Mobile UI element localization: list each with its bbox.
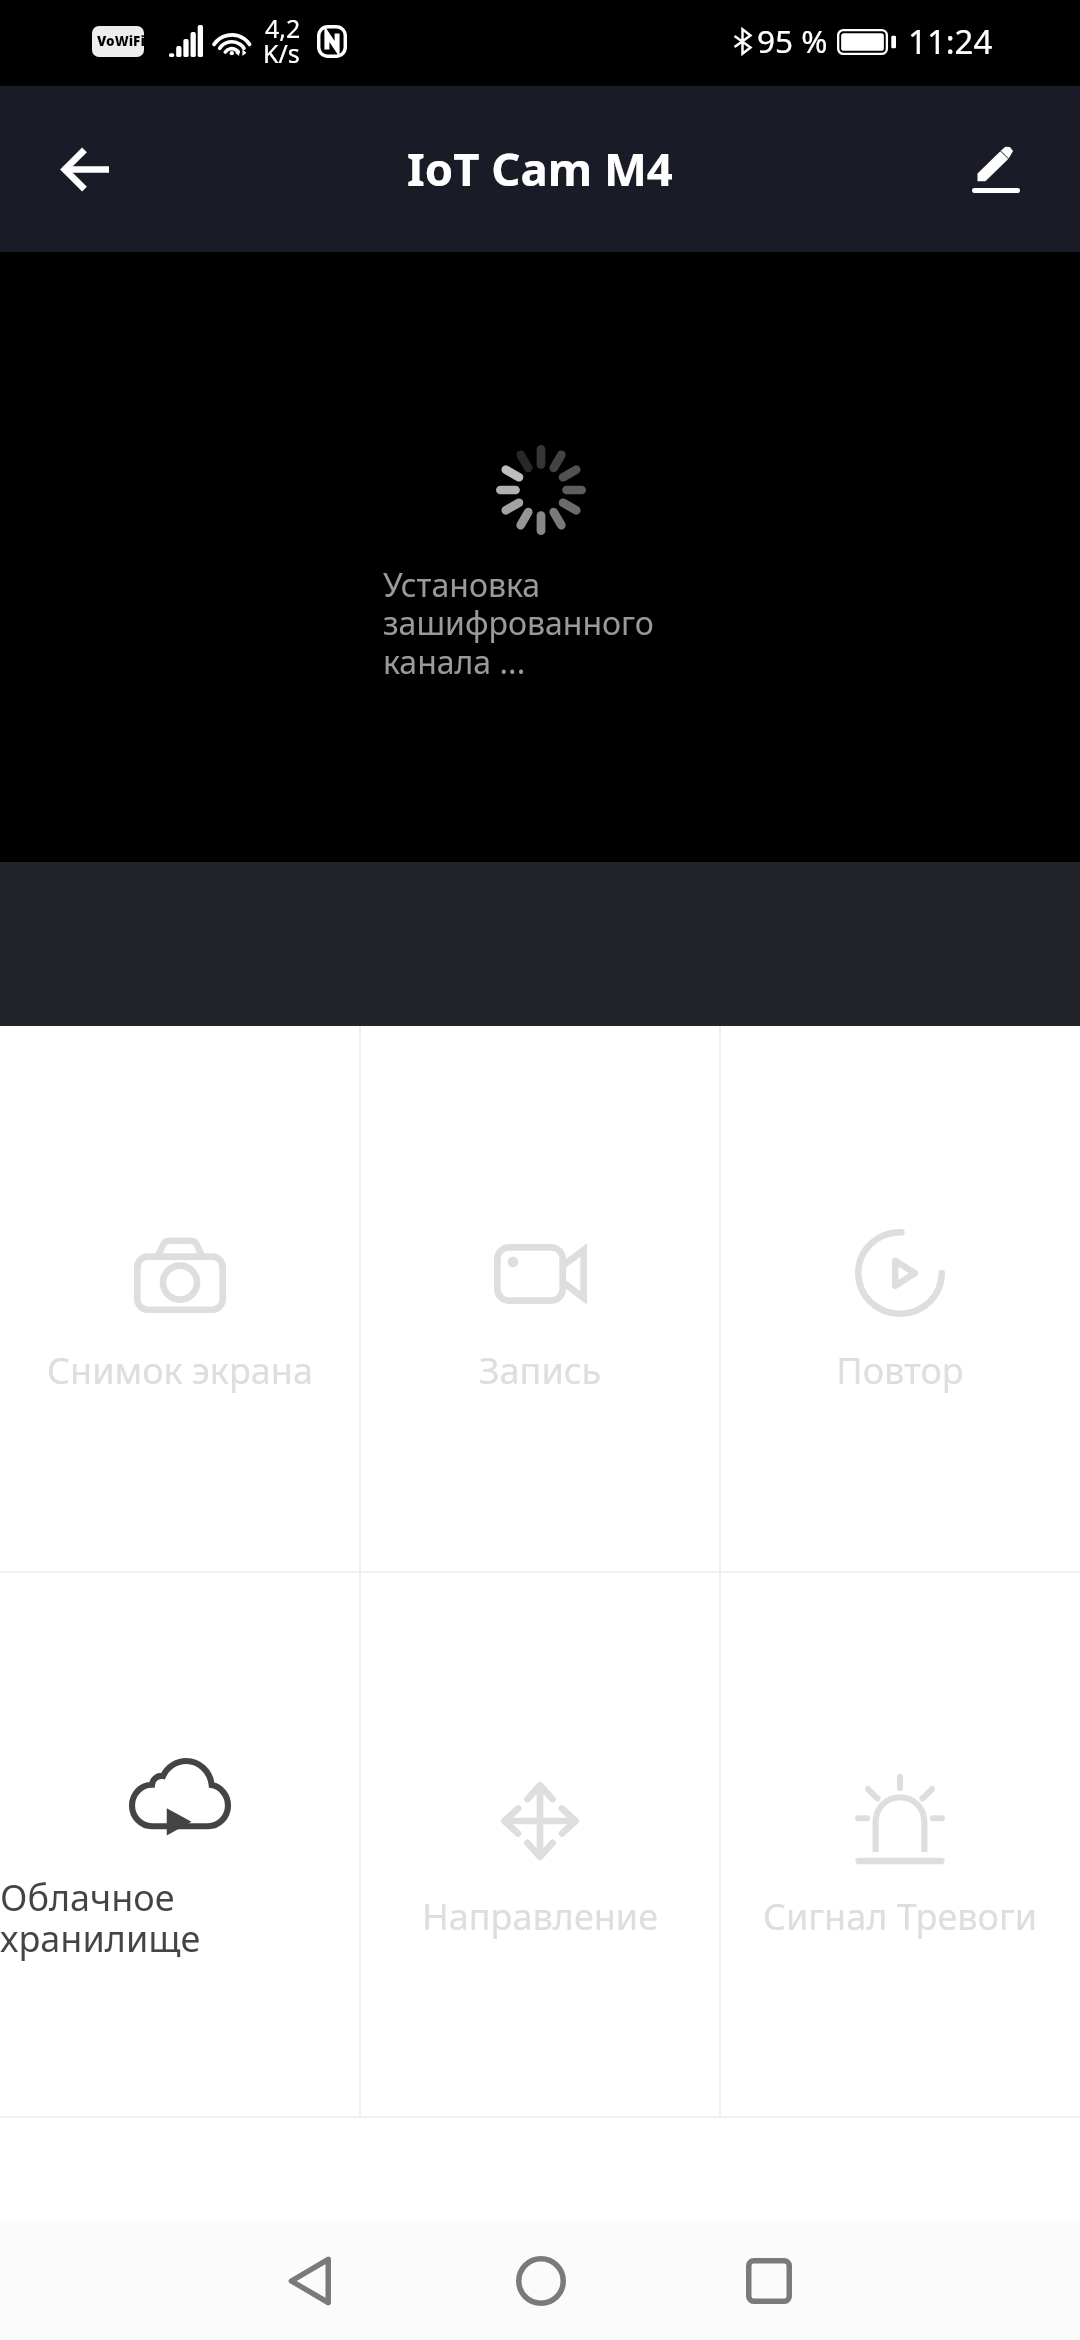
button[interactable]: Edit bbox=[912, 94, 1080, 244]
staticText: 95 % bbox=[757, 19, 828, 62]
staticText: Установка зашифрованного канала ... bbox=[383, 563, 654, 684]
button[interactable]: Back bbox=[249, 2221, 369, 2340]
button[interactable]: Back bbox=[0, 94, 169, 244]
button[interactable]: Снимок экрана bbox=[0, 1026, 360, 1571]
button[interactable]: Home bbox=[481, 2221, 601, 2340]
button[interactable]: Запись bbox=[360, 1026, 720, 1571]
staticText: Облачное хранилище bbox=[0, 1873, 201, 1962]
staticText: Направление bbox=[360, 1892, 720, 1941]
staticText: Запись bbox=[360, 1346, 720, 1395]
staticText: Сигнал Тревоги bbox=[720, 1892, 1080, 1941]
staticText: 4,2 bbox=[265, 11, 301, 45]
staticText: VoWiFi bbox=[97, 32, 145, 50]
button[interactable]: Сигнал Тревоги bbox=[720, 1572, 1080, 2117]
button[interactable]: Recents bbox=[709, 2221, 829, 2340]
staticText: Снимок экрана bbox=[0, 1346, 360, 1395]
staticText: K/s bbox=[263, 36, 300, 70]
staticText: 11:24 bbox=[908, 19, 993, 64]
button[interactable]: Повтор bbox=[720, 1026, 1080, 1571]
button[interactable]: Направление bbox=[360, 1572, 720, 2117]
staticText: Повтор bbox=[720, 1346, 1080, 1395]
staticText: IoT Cam M4 bbox=[407, 137, 673, 199]
button[interactable]: Облачное хранилище bbox=[0, 1572, 360, 2117]
